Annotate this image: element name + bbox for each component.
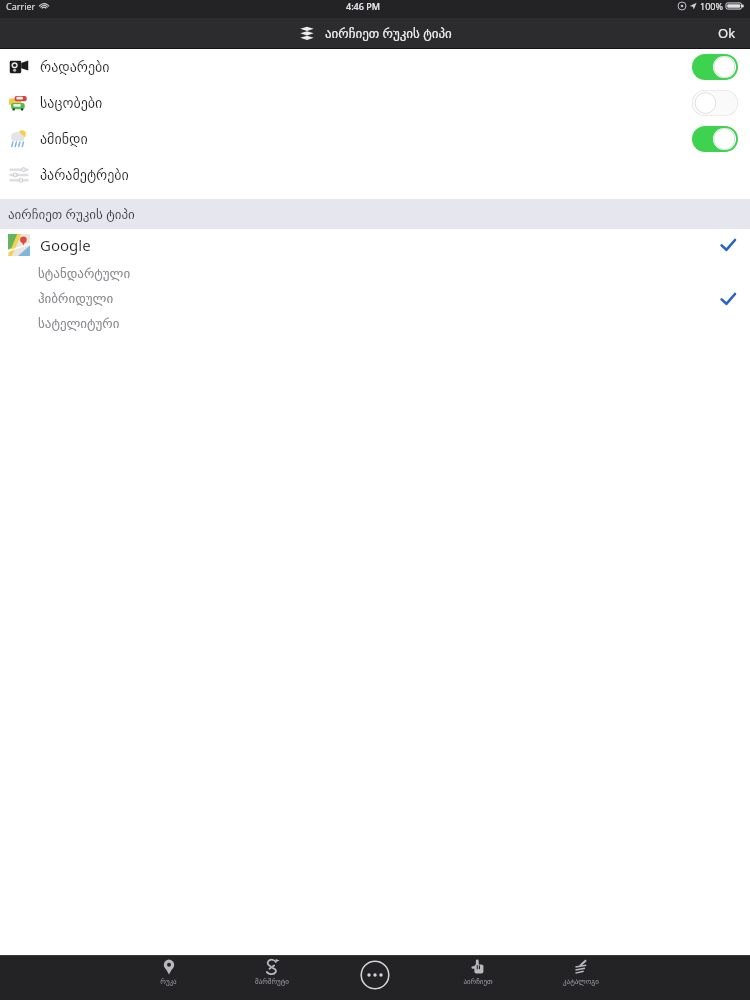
staticText: აირჩიეთ [463, 978, 493, 986]
button[interactable]: რუკა [117, 958, 220, 986]
button[interactable]: On [692, 54, 738, 80]
button[interactable]: სატელიტური [0, 311, 750, 336]
button[interactable]: აირჩიეთ [426, 958, 529, 986]
staticText: აირჩიეთ რუკის ტიპი [8, 205, 135, 223]
button[interactable]: Off [692, 90, 738, 116]
staticText: Google [40, 235, 91, 255]
staticText: აირჩიეთ რუკის ტიპი [325, 24, 452, 42]
staticText: Carrier [6, 0, 36, 12]
staticText: ჰიბრიდული [38, 291, 114, 306]
staticText: რუკა [160, 978, 177, 986]
button[interactable]: ამინდი [0, 121, 750, 157]
button[interactable]: ჰიბრიდული [0, 286, 750, 311]
staticText: კატალოგი [563, 978, 599, 986]
button[interactable]: რადარები [0, 49, 750, 85]
button[interactable]: Ok [704, 20, 750, 46]
staticText: სატელიტური [38, 316, 120, 331]
button[interactable]: On [692, 126, 738, 152]
staticText: რადარები [40, 59, 110, 75]
staticText: 4:46 PM [346, 0, 380, 12]
button[interactable]: More [360, 960, 390, 990]
staticText: Ok [718, 24, 736, 42]
staticText: ამინდი [40, 131, 88, 147]
button[interactable]: საცობები [0, 85, 750, 121]
button[interactable]: სტანდარტული [0, 261, 750, 286]
staticText: მარშრუტი [255, 978, 289, 986]
staticText: პარამეტრები [40, 167, 129, 183]
button[interactable]: პარამეტრები [0, 157, 750, 193]
button[interactable]: Google [0, 229, 750, 261]
staticText: 100% [700, 0, 723, 12]
button[interactable]: მარშრუტი [220, 958, 323, 986]
staticText: საცობები [40, 95, 103, 111]
staticText: სტანდარტული [38, 266, 131, 281]
button[interactable]: კატალოგი [529, 958, 632, 986]
